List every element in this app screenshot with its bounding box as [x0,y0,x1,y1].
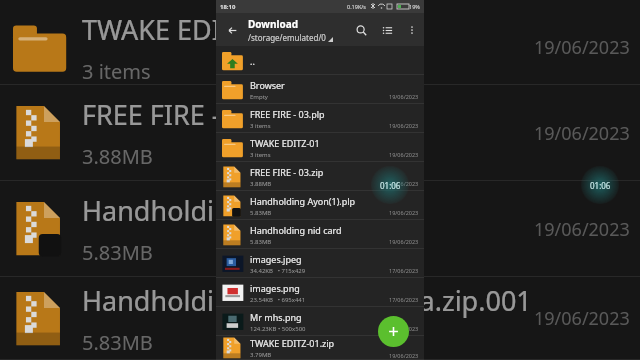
staticText: 3.88MB [250,180,272,188]
staticText: Handholding Ayon(1).plp [250,195,356,207]
staticText: 19/06/2023 [389,180,419,187]
staticText: 5.83MB [82,239,153,266]
staticText: 19/06/2023 [534,306,630,331]
staticText: 01:06 [590,180,611,191]
staticText: 19/06/2023 [389,238,419,245]
button[interactable]: Browser [216,75,424,104]
staticText: 18:10 [220,3,236,11]
button[interactable]: Add [378,316,409,347]
staticText: Handholding Ayon(1).plp [82,192,398,229]
button[interactable]: View mode [374,17,400,43]
button[interactable]: Handholding Ayon(1).plp [216,191,424,220]
staticText: 19% [409,3,420,10]
staticText: 19/06/2023 [389,151,419,158]
staticText: 124.23KB • 500x500 [250,325,306,333]
staticText: 17/06/2023 [389,267,419,274]
staticText: Browser [250,79,285,91]
button[interactable]: Mr mhs.png [216,307,424,336]
staticText: 19/06/2023 [534,217,630,242]
staticText: images.png [250,282,300,294]
staticText: 0.19K/s [347,3,366,10]
button[interactable]: TWAKE EDITZ-01.zip [216,336,424,360]
button[interactable]: Handholding nid card Rana.zip.001 [0,277,640,360]
button[interactable]: FREE FIRE - 03.plp [216,104,424,133]
staticText: 5.83MB [250,209,272,217]
staticText: Download [248,17,298,31]
staticText: Empty [250,93,268,101]
staticText: 3 items [250,151,271,159]
staticText: 19/06/2023 [534,35,630,60]
button[interactable]: Search [348,17,374,43]
staticText: 3 items [82,58,151,85]
button[interactable]: Back [216,14,248,46]
staticText: TWAKE EDITZ-01.zip [250,337,335,349]
button[interactable]: images.png [216,278,424,307]
button[interactable]: Handholding nid card Rana.zip.001 [216,220,424,249]
button[interactable]: Handholding Ayon(1).plp [0,181,640,277]
button[interactable]: TWAKE EDITZ-01 [216,133,424,162]
staticText: images.jpeg [250,253,302,265]
staticText: 3.88MB [82,143,153,170]
staticText: 17/06/2023 [389,296,419,303]
staticText: Mr mhs.png [250,311,302,323]
staticText: 01:06 [380,180,401,191]
staticText: 34.42KB • 715x429 [250,267,306,275]
button[interactable]: .. [216,46,424,75]
button[interactable]: FREE FIRE - 03.zip [216,162,424,191]
staticText: 3.79MB [250,351,272,359]
staticText: /storage/emulated/0 [248,32,326,43]
button[interactable]: TWAKE EDITZ-01 [0,10,640,85]
staticText: 19/06/2023 [534,121,630,146]
button[interactable]: More options [400,18,424,42]
staticText: 3 items [250,122,271,130]
button[interactable]: Download [248,17,348,43]
staticText: 19/06/2023 [389,122,419,129]
staticText: 19/06/2023 [389,93,419,100]
staticText: FREE FIRE - 03.zip [82,96,302,133]
staticText: 5.83MB [250,238,272,246]
staticText: Handholding nid card Rana.zip.001 [82,282,532,319]
button[interactable]: FREE FIRE - 03.zip [0,85,640,181]
staticText: TWAKE EDITZ-01 [250,137,320,149]
staticText: 19/06/2023 [389,352,419,359]
staticText: .. [250,55,255,67]
staticText: FREE FIRE - 03.plp [250,108,325,120]
staticText: 5.83MB [82,329,153,356]
staticText: Handholding nid card Rana.zip.001 [250,224,389,236]
button[interactable]: images.jpeg [216,249,424,278]
staticText: FREE FIRE - 03.zip [250,166,324,178]
staticText: 23.54KB • 695x441 [250,296,306,304]
staticText: TWAKE EDITZ-01 [82,11,291,48]
staticText: 12/06/2023 [389,325,419,332]
staticText: 19/06/2023 [389,209,419,216]
